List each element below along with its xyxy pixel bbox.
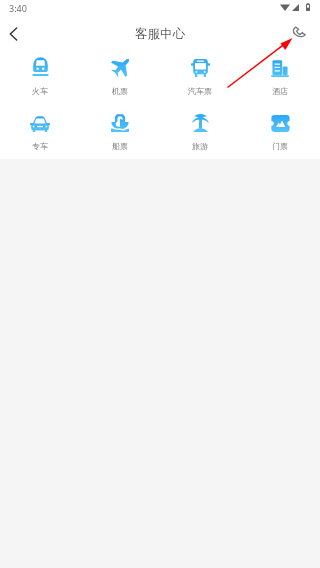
button[interactable]: 门票 xyxy=(240,112,320,159)
staticText: 门票 xyxy=(272,141,288,151)
staticText: 船票 xyxy=(112,141,128,151)
staticText: 客服中心 xyxy=(135,26,185,42)
button[interactable]: 机票 xyxy=(80,57,160,104)
button[interactable]: 船票 xyxy=(80,112,160,159)
button[interactable]: Call customer service xyxy=(280,20,320,48)
staticText: 火车 xyxy=(32,86,48,96)
staticText: 酒店 xyxy=(272,86,288,96)
button[interactable]: 汽车票 xyxy=(160,57,240,104)
staticText: 专车 xyxy=(32,141,48,151)
staticText: 3:40 xyxy=(9,2,27,14)
button[interactable]: Back xyxy=(0,20,40,48)
staticText: 汽车票 xyxy=(188,86,212,96)
staticText: 旅游 xyxy=(192,141,208,151)
button[interactable]: 酒店 xyxy=(240,57,320,104)
button[interactable]: 火车 xyxy=(0,57,80,104)
button[interactable]: 旅游 xyxy=(160,112,240,159)
button[interactable]: 专车 xyxy=(0,112,80,159)
staticText: 机票 xyxy=(112,86,128,96)
